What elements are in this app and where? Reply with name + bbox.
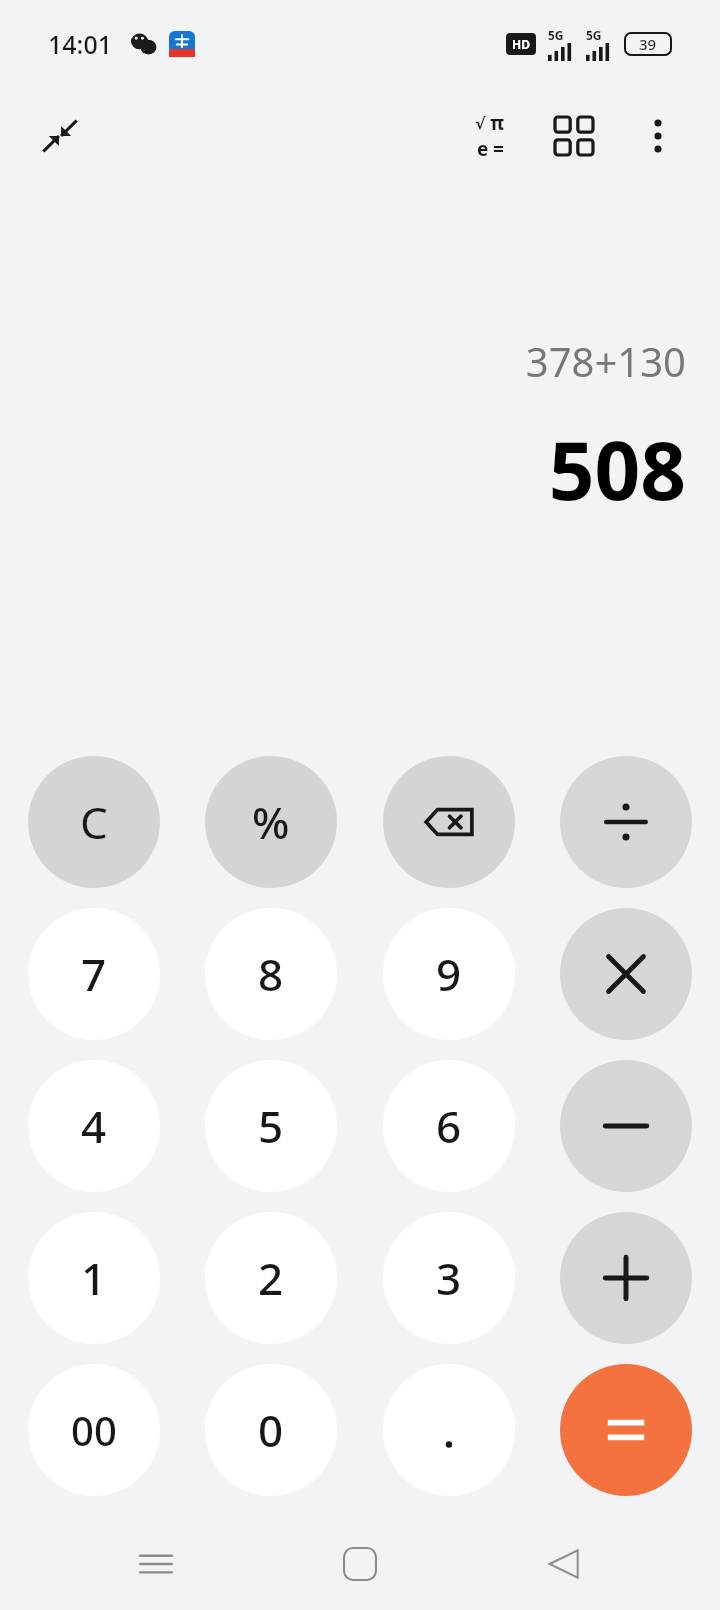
button[interactable]: Recents: [108, 1518, 204, 1610]
button[interactable]: Unit converter: [538, 100, 610, 172]
button[interactable]: 1: [28, 1212, 160, 1344]
button[interactable]: 5: [205, 1060, 337, 1192]
staticText: 9: [436, 944, 462, 1004]
staticText: 8: [258, 944, 284, 1004]
staticText: 6: [436, 1096, 462, 1156]
staticText: 0: [258, 1400, 284, 1460]
button[interactable]: 6: [383, 1060, 515, 1192]
staticText: 5G: [586, 27, 602, 43]
staticText: 5: [258, 1096, 284, 1156]
button[interactable]: 3: [383, 1212, 515, 1344]
button[interactable]: 7: [28, 908, 160, 1040]
button[interactable]: Home: [312, 1518, 408, 1610]
staticText: 2: [258, 1248, 284, 1308]
button[interactable]: Scientific mode: [454, 100, 526, 172]
button[interactable]: Plus: [560, 1212, 692, 1344]
staticText: 14:01: [48, 27, 113, 61]
button[interactable]: 9: [383, 908, 515, 1040]
button[interactable]: 4: [28, 1060, 160, 1192]
staticText: 4: [81, 1096, 107, 1156]
button[interactable]: Backspace: [383, 756, 515, 888]
staticText: =: [493, 136, 504, 162]
button[interactable]: Divide: [560, 756, 692, 888]
staticText: 7: [81, 944, 107, 1004]
button[interactable]: 8: [205, 908, 337, 1040]
button[interactable]: 0: [205, 1364, 337, 1496]
staticText: 1: [81, 1248, 107, 1308]
staticText: 00: [71, 1403, 117, 1457]
button[interactable]: %: [205, 756, 337, 888]
staticText: HD: [512, 36, 530, 52]
staticText: 378+130: [525, 334, 686, 388]
button[interactable]: Multiply: [560, 908, 692, 1040]
button[interactable]: Equals: [560, 1364, 692, 1496]
button[interactable]: More options: [622, 100, 694, 172]
button[interactable]: Back: [516, 1518, 612, 1610]
staticText: C: [80, 792, 108, 852]
button[interactable]: C: [28, 756, 160, 888]
staticText: 3: [436, 1248, 462, 1308]
button[interactable]: Minus: [560, 1060, 692, 1192]
staticText: e: [477, 136, 489, 162]
staticText: √: [475, 114, 486, 133]
staticText: %: [252, 792, 290, 852]
staticText: π: [490, 110, 505, 136]
button[interactable]: 2: [205, 1212, 337, 1344]
staticText: 39: [639, 34, 657, 54]
staticText: 5G: [548, 27, 564, 43]
staticText: 508: [548, 414, 686, 523]
button[interactable]: Collapse: [28, 104, 92, 168]
button[interactable]: [383, 1364, 515, 1496]
button[interactable]: 00: [28, 1364, 160, 1496]
